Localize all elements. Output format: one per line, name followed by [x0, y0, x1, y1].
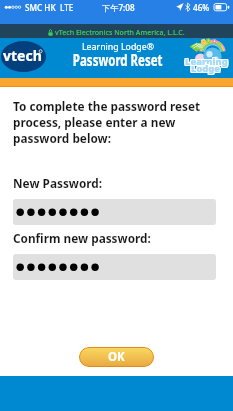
staticText: New Password: [13, 175, 103, 191]
staticText: OK [108, 349, 125, 365]
button[interactable]: Password input [13, 199, 216, 225]
staticText: Learning [185, 56, 228, 69]
staticText: Lodge [191, 62, 221, 75]
staticText: Learning [185, 54, 228, 67]
staticText: Lodge [192, 61, 222, 74]
staticText: Learning [186, 54, 229, 67]
staticText: Lodge [190, 61, 220, 74]
staticText: vTech Electronics North America, L.L.C. [55, 27, 185, 37]
staticText: SMC HK [25, 2, 56, 13]
staticText: Lodge [192, 62, 222, 75]
staticText: Learning [184, 56, 227, 69]
button[interactable]: OK [79, 347, 154, 367]
staticText: Learning Lodge® [82, 41, 155, 53]
staticText: To complete the password reset process, … [13, 98, 201, 146]
staticText: 下午7:08 [102, 2, 135, 13]
button[interactable]: Password input [13, 254, 216, 280]
staticText: Lodge [191, 61, 221, 74]
staticText: Learning [185, 55, 228, 68]
staticText: Password Reset [73, 48, 163, 70]
staticText: Lodge [191, 63, 221, 76]
staticText: Lodge [192, 63, 222, 76]
staticText: Learning [184, 55, 227, 68]
staticText: vtech [3, 46, 42, 65]
staticText: Lodge [190, 63, 220, 76]
staticText: Learning [186, 55, 229, 68]
staticText: Lodge [190, 62, 220, 75]
staticText: LTE [60, 2, 74, 13]
staticText: Learning [186, 56, 229, 69]
staticText: Learning [184, 54, 227, 67]
staticText: 46% [193, 2, 210, 13]
staticText: Confirm new password: [13, 230, 151, 246]
